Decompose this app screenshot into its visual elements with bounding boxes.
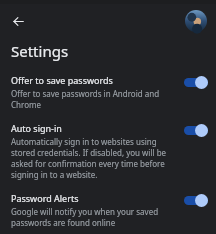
staticText: Google will notify you when your saved p… <box>11 206 178 228</box>
button[interactable]: Account <box>183 8 209 34</box>
staticText: Settings <box>11 41 69 61</box>
button[interactable]: Back <box>7 10 29 32</box>
staticText: Password Alerts <box>11 192 79 204</box>
staticText: Offer to save passwords <box>11 74 113 86</box>
button[interactable]: Auto sign-in <box>0 118 216 183</box>
button[interactable]: Offer to save passwords <box>0 70 216 113</box>
staticText: Offer to save passwords in Android and C… <box>11 88 178 110</box>
button[interactable]: Password Alerts <box>0 188 216 231</box>
staticText: Auto sign-in <box>11 122 62 134</box>
button[interactable]: Toggle setting <box>184 194 208 207</box>
staticText: Automatically sign in to websites using … <box>11 136 178 180</box>
button[interactable]: Toggle setting <box>184 124 208 137</box>
button[interactable]: Toggle setting <box>184 76 208 89</box>
